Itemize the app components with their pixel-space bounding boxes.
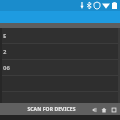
button[interactable]: 2 <box>2 44 118 60</box>
staticText: 06 <box>3 64 10 72</box>
button[interactable]: 06 <box>2 60 118 76</box>
button[interactable]: E <box>2 28 118 44</box>
staticText: SCAN FOR DEVICES <box>27 106 76 113</box>
button[interactable]: Recents <box>110 106 117 113</box>
staticText: 2 <box>3 48 7 56</box>
button[interactable]: Home <box>100 106 107 113</box>
button[interactable] <box>2 76 118 92</box>
staticText: E <box>3 32 7 40</box>
button[interactable]: Back <box>90 106 97 113</box>
button[interactable]: SCAN FOR DEVICES <box>20 103 82 115</box>
